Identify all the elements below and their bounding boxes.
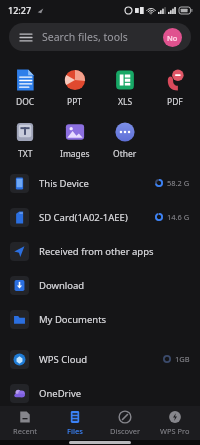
button[interactable]: WPS Cloud (0, 346, 200, 372)
staticText: Search files, tools (42, 30, 128, 44)
button[interactable]: Discover (100, 406, 150, 440)
staticText: SD Card(1A02-1AEE) (39, 211, 128, 224)
button[interactable]: Other (109, 118, 141, 162)
button[interactable]: Recent (0, 406, 50, 440)
staticText: XLS (118, 96, 133, 108)
staticText: Discover (110, 426, 141, 436)
button[interactable]: TXT (9, 118, 41, 162)
button[interactable]: Menu (9, 23, 191, 51)
button[interactable]: PDF (159, 66, 191, 110)
button[interactable]: Menu (18, 29, 34, 45)
button[interactable]: XLS (109, 66, 141, 110)
staticText: WPS Cloud (39, 353, 88, 366)
button[interactable]: Files (50, 406, 100, 440)
button[interactable]: Received from other apps (0, 238, 200, 264)
button[interactable]: OneDrive (0, 380, 200, 406)
staticText: My Documents (39, 313, 107, 326)
staticText: DOC (16, 96, 35, 108)
button[interactable]: WPS Pro (150, 406, 200, 440)
staticText: 14.6 G (167, 212, 190, 222)
button[interactable]: Account (163, 28, 182, 47)
button[interactable]: DOC (9, 66, 41, 110)
button[interactable]: Images (56, 118, 94, 162)
staticText: Download (39, 279, 85, 292)
staticText: This Device (39, 177, 89, 190)
staticText: 58.2 G (167, 178, 190, 188)
staticText: Other (113, 148, 137, 160)
staticText: PPT (67, 96, 83, 108)
staticText: Images (60, 148, 90, 160)
staticText: WPS Pro (160, 426, 190, 436)
button[interactable]: This Device (0, 170, 200, 196)
button[interactable]: PPT (59, 66, 91, 110)
staticText: Files (67, 426, 83, 436)
staticText: Received from other apps (39, 245, 154, 258)
staticText: Recent (13, 426, 38, 436)
staticText: OneDrive (39, 387, 82, 400)
button[interactable]: Download (0, 272, 200, 298)
button[interactable]: SD Card(1A02-1AEE) (0, 204, 200, 230)
staticText: 1GB (175, 354, 190, 364)
staticText: No (167, 33, 178, 43)
button[interactable]: My Documents (0, 306, 200, 332)
staticText: 12:27 (8, 4, 32, 16)
staticText: PDF (167, 96, 183, 108)
staticText: TXT (18, 148, 33, 160)
